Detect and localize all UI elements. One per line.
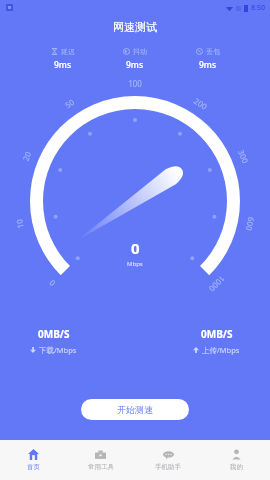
staticText: Mbps: [127, 260, 143, 268]
button[interactable]: 首页: [0, 440, 67, 480]
button[interactable]: 常用工具: [67, 440, 134, 480]
button[interactable]: 开始测速: [81, 399, 189, 420]
staticText: 下载/Mbps: [39, 345, 77, 355]
staticText: 丢包: [206, 47, 220, 56]
staticText: 10: [13, 218, 26, 230]
staticText: 首页: [27, 463, 40, 471]
staticText: 我的: [230, 463, 243, 471]
staticText: 0: [46, 278, 58, 289]
staticText: 上传/Mbps: [202, 345, 240, 355]
staticText: 延迟: [61, 47, 75, 56]
staticText: 0: [131, 238, 140, 258]
staticText: 9ms: [199, 59, 217, 71]
staticText: 8:50: [251, 3, 265, 13]
staticText: 50: [62, 96, 76, 111]
staticText: 开始测速: [117, 404, 153, 415]
staticText: 0MB/S: [201, 327, 233, 341]
staticText: 9ms: [126, 59, 144, 71]
staticText: 抖动: [133, 47, 147, 56]
staticText: 20: [19, 149, 33, 163]
button[interactable]: 手机助手: [134, 440, 202, 480]
staticText: 网速测试: [113, 20, 157, 34]
button[interactable]: 抖动: [117, 45, 153, 73]
staticText: 300: [236, 148, 251, 165]
staticText: 200: [192, 95, 210, 112]
button[interactable]: 0MB/S: [26, 323, 81, 359]
staticText: 9ms: [54, 59, 72, 71]
staticText: 手机助手: [155, 463, 181, 471]
button[interactable]: 0MB/S: [189, 323, 244, 359]
button[interactable]: 延迟: [45, 45, 81, 73]
staticText: 常用工具: [88, 463, 114, 471]
button[interactable]: 丢包: [190, 45, 226, 73]
button[interactable]: 我的: [202, 440, 270, 480]
staticText: 600: [244, 216, 257, 232]
staticText: 0MB/S: [38, 327, 70, 341]
staticText: 1000: [207, 273, 228, 295]
staticText: 100: [128, 78, 142, 89]
